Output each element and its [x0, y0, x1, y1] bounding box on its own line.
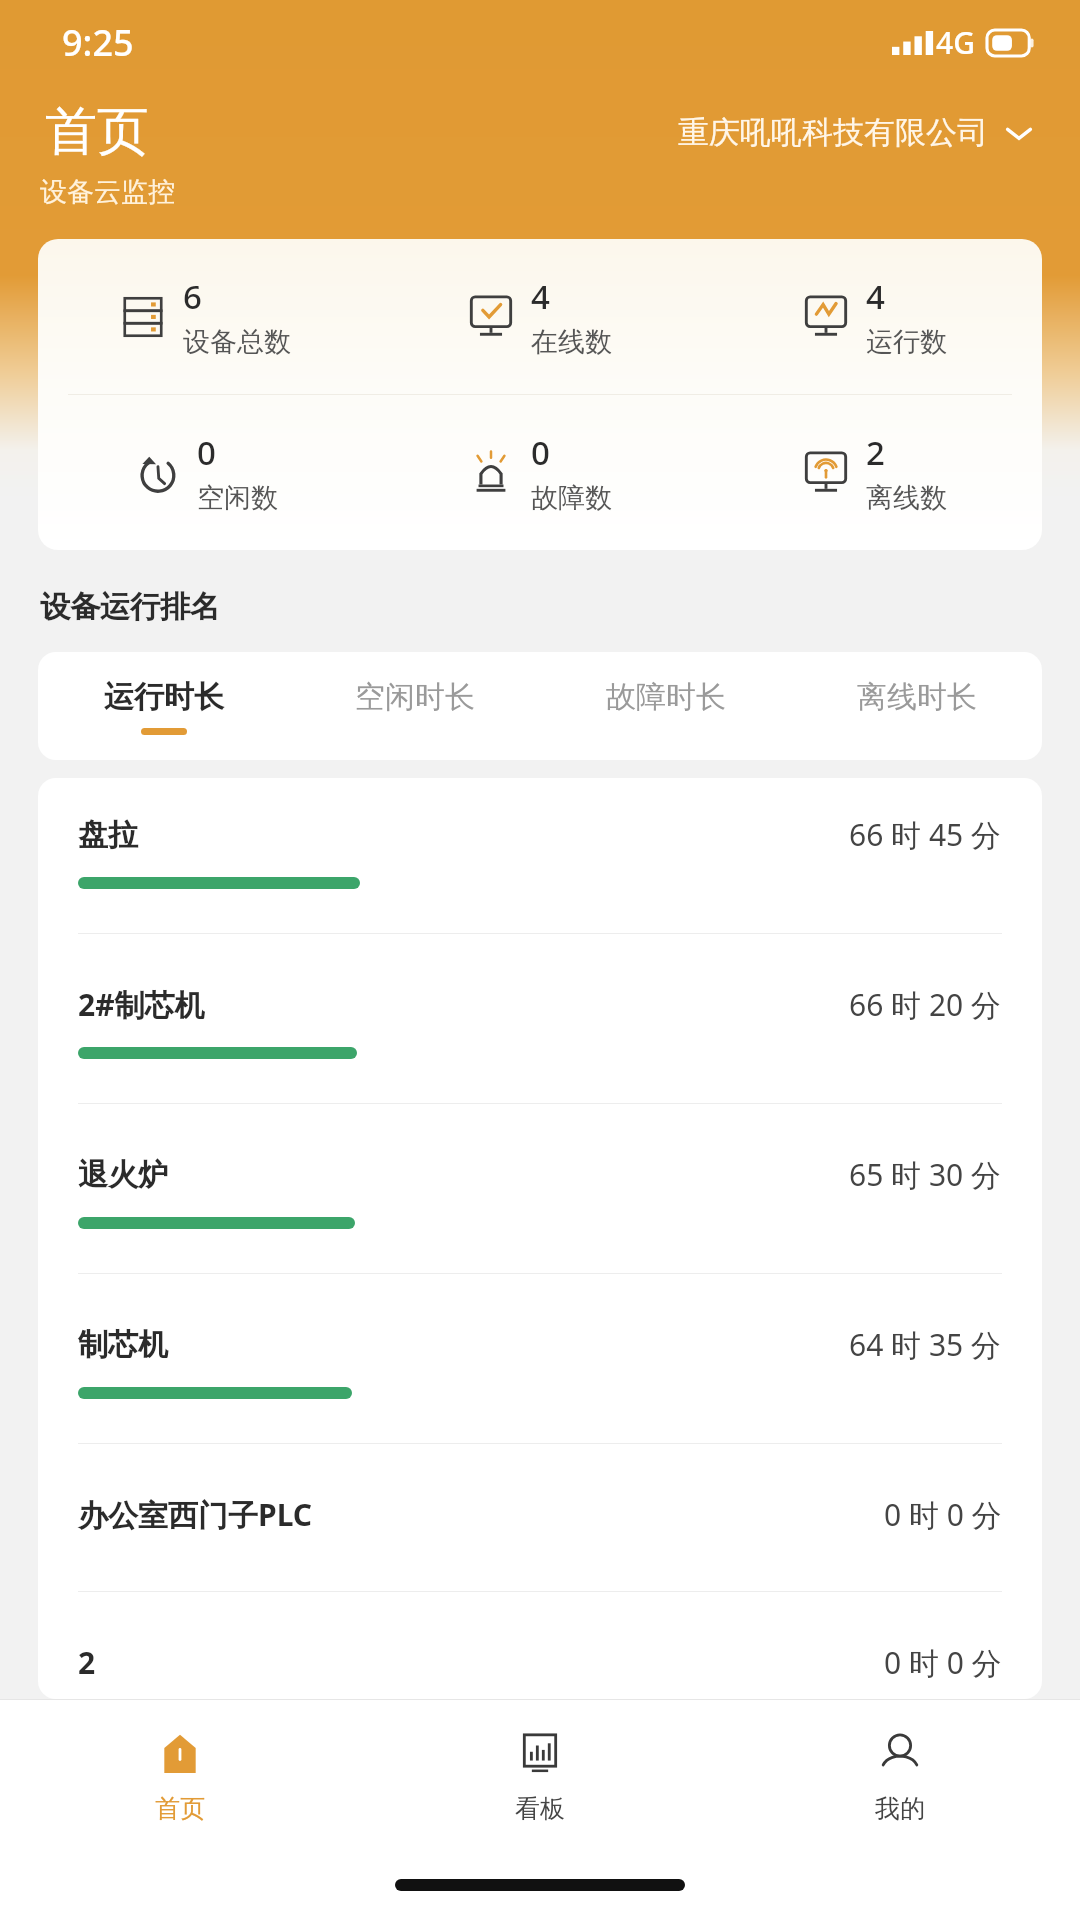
staticText: 看板 — [515, 1793, 565, 1824]
staticText: 4 — [531, 274, 550, 319]
button[interactable]: 制芯机 — [38, 1324, 1042, 1443]
button[interactable]: 运行时长 — [38, 652, 289, 760]
button[interactable]: 空闲时长 — [289, 652, 540, 760]
staticText: 2 — [78, 1642, 96, 1683]
staticText: 设备运行排名 — [40, 588, 220, 626]
staticText: 4G — [936, 22, 975, 63]
button[interactable]: 首页 — [0, 1700, 360, 1850]
button[interactable]: 6 — [38, 239, 372, 394]
staticText: 首页 — [45, 99, 149, 165]
staticText: 空闲时长 — [355, 678, 475, 716]
button[interactable]: 4 — [707, 239, 1042, 394]
button[interactable]: 退火炉 — [38, 1154, 1042, 1273]
staticText: 空闲数 — [197, 481, 278, 515]
button[interactable]: 离线时长 — [791, 652, 1042, 760]
button[interactable]: 重庆吼吼科技有限公司 — [672, 107, 1040, 158]
staticText: 66 时 20 分 — [849, 984, 1002, 1025]
staticText: 离线时长 — [857, 678, 977, 716]
button[interactable]: 0 — [38, 395, 372, 550]
staticText: 在线数 — [531, 325, 612, 359]
button[interactable]: 2 — [38, 1642, 1042, 1699]
staticText: 离线数 — [866, 481, 947, 515]
button[interactable]: 2 — [707, 395, 1042, 550]
staticText: 办公室西门子PLC — [78, 1494, 313, 1535]
staticText: 故障时长 — [606, 678, 726, 716]
button[interactable]: 盘拉 — [38, 814, 1042, 933]
staticText: 0 — [197, 430, 216, 475]
staticText: 运行数 — [866, 325, 947, 359]
staticText: 6 — [183, 274, 202, 319]
button[interactable]: 我的 — [720, 1700, 1080, 1850]
staticText: 盘拉 — [78, 816, 138, 854]
staticText: 0 时 0 分 — [884, 1494, 1002, 1535]
button[interactable]: 办公室西门子PLC — [38, 1494, 1042, 1591]
staticText: 65 时 30 分 — [849, 1154, 1002, 1195]
staticText: 首页 — [155, 1793, 205, 1824]
button[interactable]: 4 — [372, 239, 707, 394]
staticText: 2#制芯机 — [78, 984, 205, 1025]
staticText: 64 时 35 分 — [849, 1324, 1002, 1365]
staticText: 2 — [866, 430, 885, 475]
button[interactable]: 0 — [372, 395, 707, 550]
staticText: 我的 — [875, 1793, 925, 1824]
staticText: 设备总数 — [183, 325, 291, 359]
staticText: 运行时长 — [104, 678, 224, 716]
staticText: 0 — [531, 430, 550, 475]
button[interactable]: 故障时长 — [540, 652, 791, 760]
staticText: 4 — [866, 274, 885, 319]
staticText: 设备云监控 — [40, 175, 175, 209]
button[interactable]: 看板 — [360, 1700, 720, 1850]
staticText: 制芯机 — [78, 1326, 168, 1364]
staticText: 66 时 45 分 — [849, 814, 1002, 855]
staticText: 故障数 — [531, 481, 612, 515]
staticText: 重庆吼吼科技有限公司 — [678, 113, 988, 152]
staticText: 0 时 0 分 — [884, 1642, 1002, 1683]
staticText: 退火炉 — [78, 1156, 168, 1194]
button[interactable]: 2#制芯机 — [38, 984, 1042, 1103]
staticText: 9:25 — [62, 18, 134, 67]
